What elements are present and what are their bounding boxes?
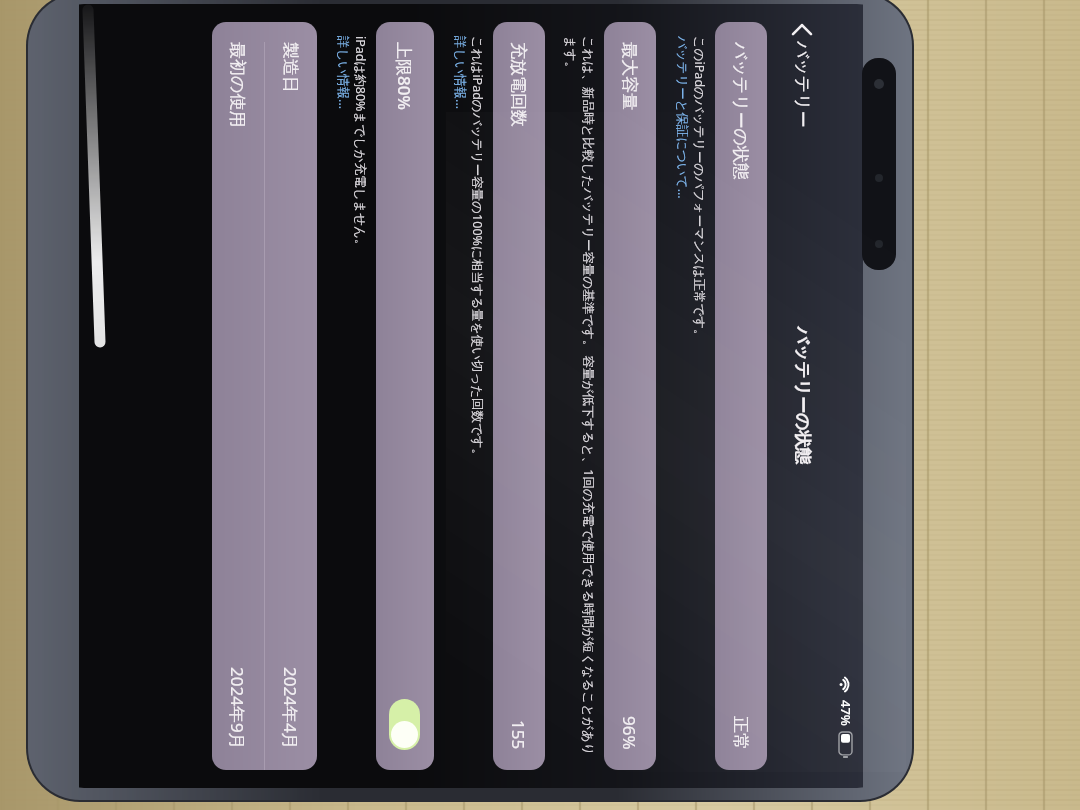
button[interactable]: 詳しい情報...	[452, 36, 469, 110]
button[interactable]: 製造日	[265, 22, 317, 770]
staticText: 上限80%	[393, 42, 416, 110]
button[interactable]: 詳しい情報...	[335, 36, 352, 110]
staticText: 2024年4月	[279, 667, 302, 750]
staticText: バッテリー	[792, 41, 813, 128]
button[interactable]: 上限80%	[376, 22, 434, 770]
staticText: 最大容量	[619, 42, 640, 110]
staticText: iPadは約80%までしか充電しません。	[352, 36, 369, 255]
staticText: これはiPadのバッテリー容量の100%に相当する量を使い切った回数です。	[469, 36, 486, 465]
button[interactable]: 最初の使用	[212, 22, 264, 770]
staticText: バッテリーの状態	[792, 327, 813, 465]
staticText: このiPadのバッテリーのパフォーマンスは正常です。	[691, 36, 708, 345]
staticText: 製造日	[280, 42, 301, 93]
staticText: 2024年9月	[226, 667, 249, 750]
staticText: 最初の使用	[227, 42, 248, 128]
button[interactable]: 最大容量	[604, 22, 656, 770]
staticText: 155	[507, 720, 530, 750]
staticText: 47%	[837, 700, 855, 726]
button[interactable]: バッテリー	[786, 18, 819, 134]
staticText: 充放電回数	[508, 42, 529, 127]
button[interactable]: バッテリーと保証について...	[674, 36, 691, 199]
button[interactable]: バッテリーの状態	[715, 22, 767, 770]
staticText: 正常	[730, 716, 751, 750]
button[interactable]: 上限80% 切り替え	[389, 699, 420, 750]
staticText: バッテリーの状態	[730, 42, 751, 180]
button[interactable]: 充放電回数	[493, 22, 545, 770]
staticText: これは、新品時と比較したバッテリー容量の基準です。 容量が低下すると、1回の充電…	[563, 36, 597, 758]
staticText: 96%	[618, 716, 641, 750]
